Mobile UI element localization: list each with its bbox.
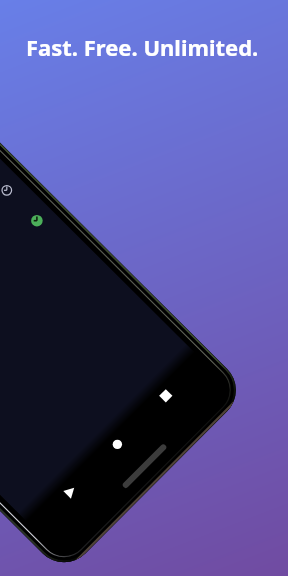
staticText: Fast. Free. Unlimited. [26,32,259,62]
